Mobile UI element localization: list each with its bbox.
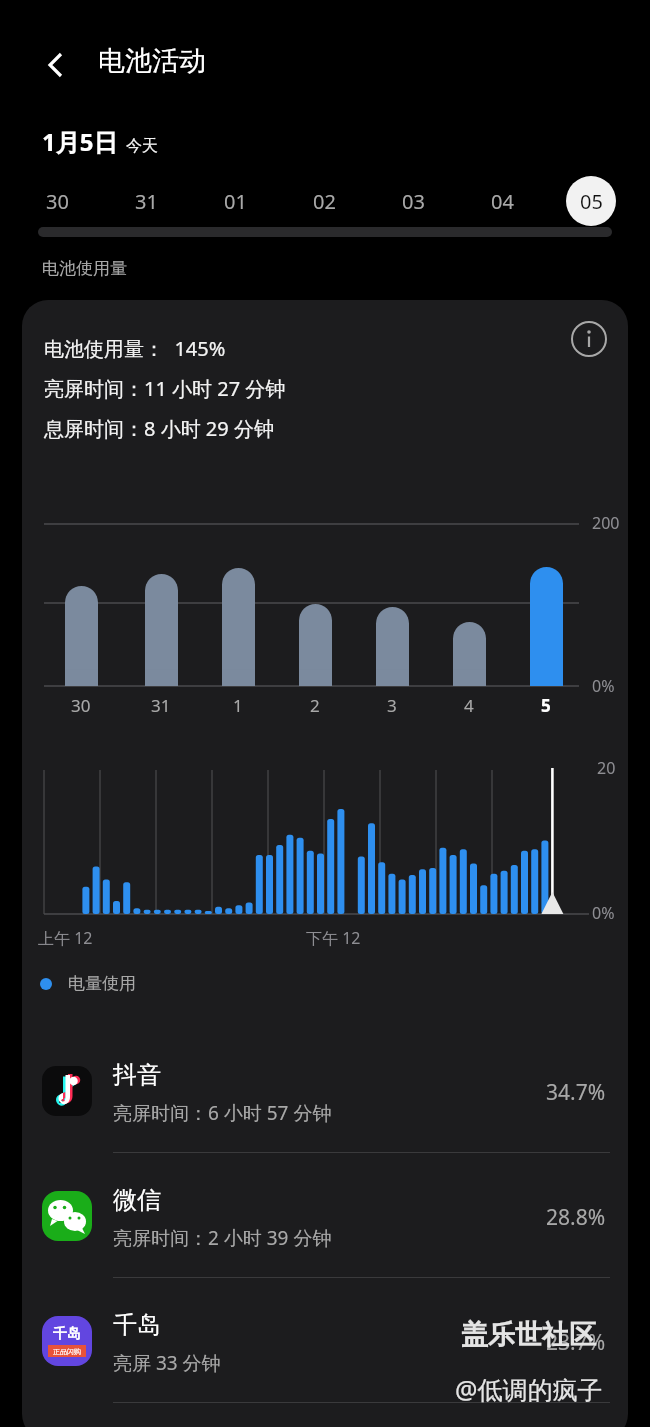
staticText: 盖乐世社区 — [461, 1318, 596, 1352]
button[interactable]: 30 — [32, 176, 82, 226]
staticText: 3 — [387, 694, 397, 717]
staticText: 亮屏 33 分钟 — [113, 1350, 221, 1376]
staticText: 31 — [135, 188, 158, 215]
staticText: 31 — [151, 694, 171, 717]
staticText: 34.7% — [546, 1078, 606, 1107]
button[interactable]: 02 — [299, 176, 349, 226]
staticText: 20 — [597, 757, 616, 779]
staticText: 电池使用量 — [42, 258, 127, 279]
staticText: 上午 12 — [38, 927, 93, 949]
staticText: 28.8% — [546, 1203, 606, 1232]
staticText: 息屏时间：8 小时 29 分钟 — [44, 415, 274, 442]
button[interactable]: Info — [570, 320, 608, 358]
staticText: 23.7% — [546, 1328, 606, 1357]
button[interactable]: 01 — [210, 176, 260, 226]
staticText: 04 — [491, 188, 514, 215]
staticText: 4 — [464, 694, 474, 717]
staticText: 电池活动 — [98, 44, 206, 78]
staticText: 今天 — [126, 136, 158, 156]
staticText: 0% — [592, 675, 615, 697]
button[interactable]: 微信 — [22, 1173, 628, 1298]
staticText: 亮屏时间：11 小时 27 分钟 — [44, 375, 286, 402]
button[interactable]: Back — [30, 40, 80, 90]
staticText: 电量使用 — [68, 973, 136, 994]
staticText: 正品闪购 — [53, 1347, 81, 1356]
staticText: 千岛 — [53, 1325, 81, 1343]
button[interactable]: 05 — [566, 176, 616, 226]
staticText: 下午 12 — [306, 927, 361, 949]
staticText: 2 — [310, 694, 320, 717]
button[interactable]: 31 — [121, 176, 171, 226]
staticText: 亮屏时间：6 小时 57 分钟 — [113, 1100, 332, 1126]
staticText: 5 — [541, 694, 551, 717]
staticText: 电池使用量： 145% — [44, 335, 226, 362]
staticText: 03 — [402, 188, 425, 215]
staticText: 01 — [224, 188, 247, 215]
staticText: 200 — [592, 512, 620, 534]
button[interactable]: 04 — [477, 176, 527, 226]
staticText: @低调的疯子 — [455, 1372, 603, 1406]
staticText: 亮屏时间：2 小时 39 分钟 — [113, 1225, 332, 1251]
button[interactable]: 抖音 — [22, 1048, 628, 1173]
staticText: 1 — [233, 694, 243, 717]
staticText: 1月5日 — [42, 125, 118, 158]
staticText: 千岛 — [113, 1310, 161, 1340]
staticText: 0% — [592, 902, 615, 924]
staticText: 微信 — [113, 1185, 161, 1215]
staticText: 02 — [313, 188, 336, 215]
staticText: 30 — [46, 188, 69, 215]
staticText: 05 — [580, 188, 603, 215]
staticText: 30 — [71, 694, 91, 717]
button[interactable]: 03 — [388, 176, 438, 226]
button[interactable]: 千岛 — [22, 1298, 628, 1423]
staticText: 抖音 — [113, 1060, 161, 1090]
